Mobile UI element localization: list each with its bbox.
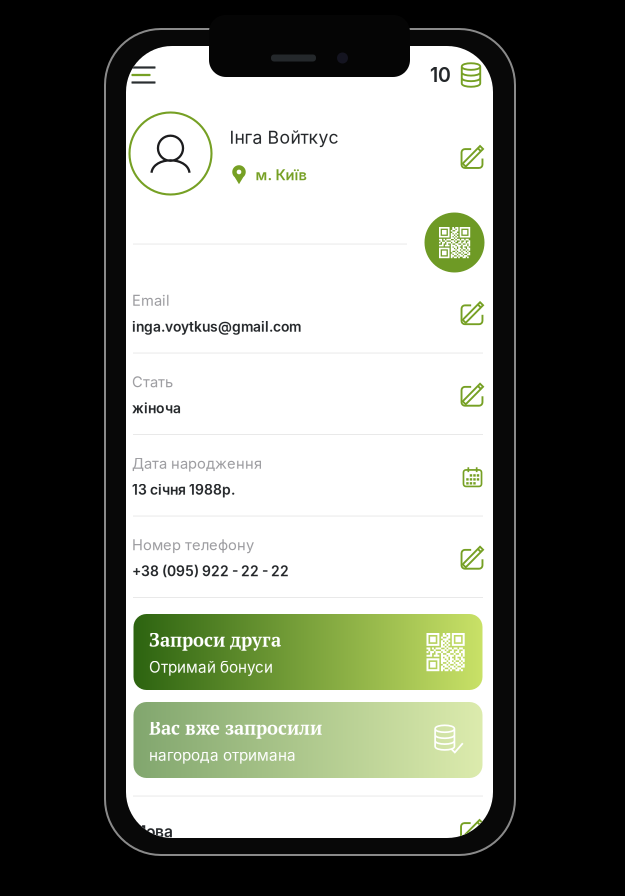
staticText: Email — [132, 291, 170, 309]
button[interactable]: Вас вже запросили — [133, 702, 482, 778]
staticText: inga.voytkus@gmail.com — [132, 318, 301, 335]
button[interactable]: Menu — [131, 60, 165, 90]
button[interactable]: Дата народження — [126, 435, 493, 515]
button[interactable]: Мова — [126, 796, 493, 866]
staticText: Інга Войткус — [229, 127, 338, 148]
staticText: жіноча — [132, 400, 181, 416]
button[interactable]: Show my QR code — [424, 212, 484, 272]
staticText: +38 (095) 922 - 22 - 22 — [132, 563, 289, 579]
staticText: Стать — [132, 373, 173, 391]
staticText: Запроси друга — [149, 628, 281, 652]
staticText: 13 січня 1988р. — [132, 481, 235, 498]
button[interactable]: Email — [126, 272, 493, 352]
button[interactable]: Edit profile — [456, 141, 488, 173]
staticText: Мова — [132, 822, 173, 841]
staticText: м. Київ — [255, 166, 306, 184]
staticText: Дата народження — [132, 454, 262, 472]
staticText: 10 — [430, 63, 451, 87]
button[interactable]: Стать — [126, 353, 493, 434]
staticText: Вас вже запросили — [149, 716, 322, 740]
staticText: Отримай бонуси — [149, 658, 273, 676]
button[interactable]: Запроси друга — [133, 614, 482, 690]
button[interactable]: Balance: 10 coins — [430, 60, 484, 90]
staticText: нагорода отримана — [149, 746, 296, 764]
staticText: Номер телефону — [132, 536, 254, 554]
button[interactable]: Номер телефону — [126, 516, 493, 597]
